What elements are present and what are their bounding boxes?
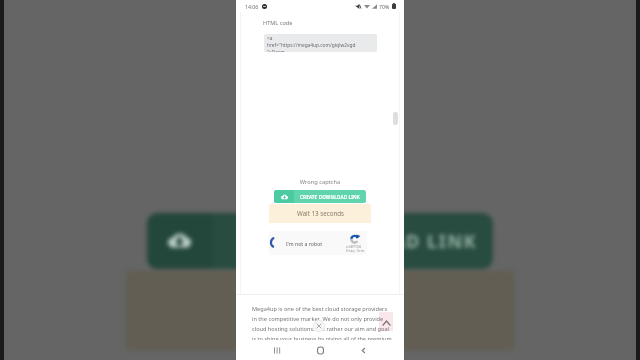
button[interactable]: Home xyxy=(309,340,331,360)
button[interactable]: Close xyxy=(313,320,325,332)
staticText: is to shine your business by giving all … xyxy=(252,335,392,343)
staticText: I'm not a robot xyxy=(286,240,323,247)
button[interactable]: Scroll to top xyxy=(379,312,393,331)
staticText: Privacy - Terms xyxy=(346,249,365,253)
staticText: Wrong captcha xyxy=(236,178,404,186)
staticText: HTML code xyxy=(263,19,293,27)
button[interactable]: CREATE DOWNLOAD LINK xyxy=(274,190,366,203)
button[interactable]: Back xyxy=(352,340,374,360)
button[interactable]: <a href="https://mega4up.com/gtqlw2vgd "… xyxy=(264,34,377,52)
staticText: reCAPTCHA xyxy=(346,245,362,249)
staticText: CREATE DOWNLOAD LINK xyxy=(300,194,360,200)
button[interactable]: I'm not a robot xyxy=(269,231,367,255)
staticText: in the competitive market. We do not onl… xyxy=(252,315,384,323)
staticText: 14:06 xyxy=(245,3,259,10)
staticText: cloud hosting solutions, but rather our … xyxy=(252,325,389,333)
button[interactable]: Recents xyxy=(266,340,288,360)
staticText: Mega4up is one of the best cloud storage… xyxy=(252,305,388,313)
staticText: Wait 13 seconds xyxy=(297,209,344,217)
staticText: 70% xyxy=(379,3,390,10)
staticText: AD LINK xyxy=(392,229,478,254)
staticText: <a href="https://mega4up.com/gtqlw2vgd "… xyxy=(267,35,356,52)
